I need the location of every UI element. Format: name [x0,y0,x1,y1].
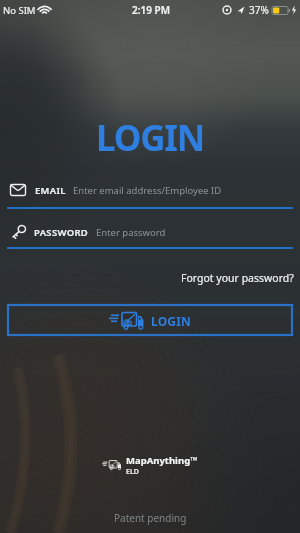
staticText: LOGIN [96,114,204,158]
button[interactable]: PASSWORD [0,217,300,247]
button[interactable]: LOGIN [8,305,292,335]
staticText: ELD [126,467,139,477]
staticText: Enter password [96,226,166,239]
staticText: MapAnything™ [126,454,198,467]
button[interactable]: EMAIL [0,175,300,208]
staticText: PASSWORD [34,226,89,239]
staticText: Enter email address/Employee ID [73,184,222,197]
staticText: EMAIL [35,184,66,197]
staticText: No SIM [3,4,36,17]
staticText: 37% [249,3,269,17]
staticText: LOGIN [151,313,192,329]
staticText: Patent pending [114,511,187,525]
staticText: 2:19 PM [132,3,170,17]
button[interactable]: Forgot your password? [181,271,294,285]
staticText: Forgot your password? [181,271,294,285]
